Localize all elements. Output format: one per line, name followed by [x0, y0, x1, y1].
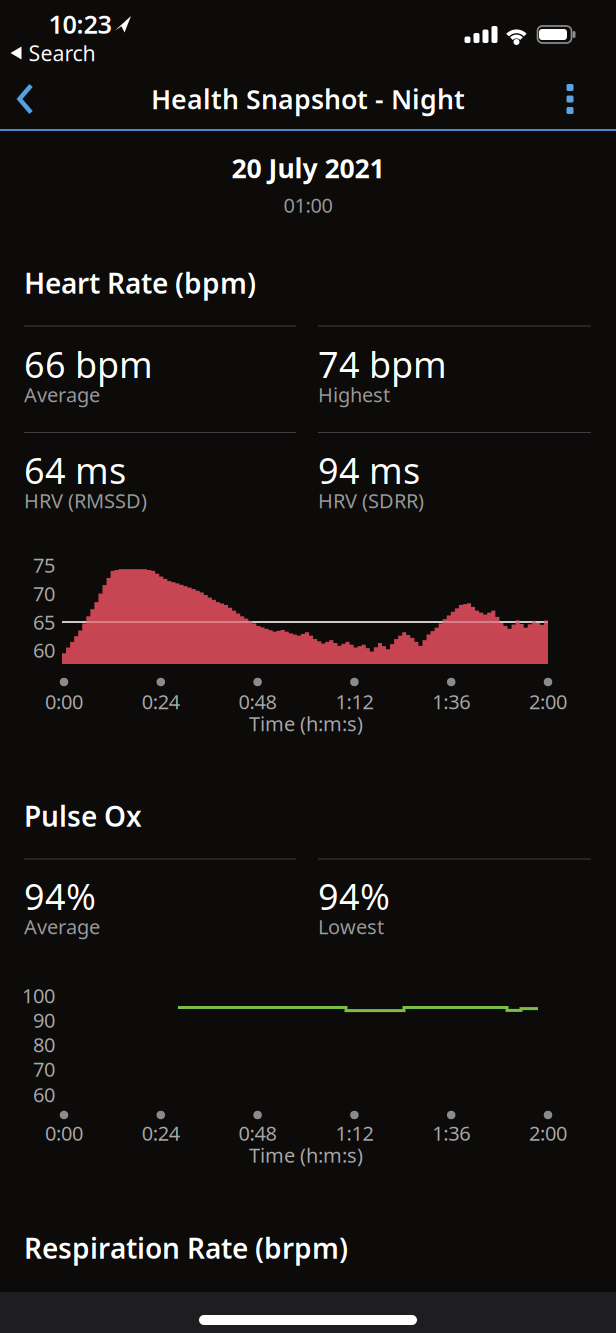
staticText: 70 — [33, 580, 55, 607]
staticText: 94 ms — [318, 446, 420, 494]
staticText: 1:36 — [432, 1120, 470, 1146]
staticText: 10:23 — [48, 7, 111, 41]
staticText: Pulse Ox — [24, 797, 142, 835]
staticText: 60 — [33, 1081, 55, 1108]
staticText: 100 — [22, 982, 55, 1009]
staticText: 60 — [33, 637, 55, 663]
staticText: Lowest — [318, 913, 384, 940]
staticText: 74 bpm — [318, 340, 447, 388]
staticText: HRV (RMSSD) — [24, 487, 147, 514]
staticText: 65 — [33, 609, 55, 635]
staticText: 0:48 — [239, 688, 277, 715]
staticText: 75 — [33, 552, 55, 578]
staticText: HRV (SDRR) — [318, 487, 424, 514]
staticText: 1:12 — [335, 1120, 373, 1146]
staticText: 0:24 — [142, 1120, 180, 1146]
staticText: Time (h:m:s) — [249, 1142, 363, 1168]
staticText: 0:48 — [239, 1120, 277, 1146]
staticText: 0:00 — [45, 688, 83, 715]
button[interactable] — [5, 77, 49, 121]
staticText: 90 — [33, 1007, 55, 1033]
staticText: 20 July 2021 — [231, 150, 384, 186]
staticText: 2:00 — [529, 688, 567, 715]
staticText: Heart Rate (bpm) — [24, 264, 256, 302]
staticText: Highest — [318, 381, 390, 408]
staticText: 2:00 — [529, 1120, 567, 1146]
staticText: Respiration Rate (brpm) — [24, 1229, 348, 1267]
staticText: 0:24 — [142, 688, 180, 715]
staticText: Search — [28, 39, 95, 67]
staticText: 1:12 — [335, 688, 373, 715]
staticText: 94% — [24, 872, 96, 920]
button[interactable] — [552, 77, 588, 121]
staticText: 1:36 — [432, 688, 470, 715]
staticText: 66 bpm — [24, 340, 153, 388]
staticText: Average — [24, 913, 100, 940]
staticText: Time (h:m:s) — [249, 710, 363, 737]
staticText: 01:00 — [283, 192, 332, 218]
staticText: 64 ms — [24, 446, 126, 494]
staticText: Average — [24, 381, 100, 408]
staticText: 80 — [33, 1031, 55, 1058]
staticText: Health Snapshot - Night — [151, 81, 465, 117]
staticText: 70 — [33, 1056, 55, 1082]
staticText: 0:00 — [45, 1120, 83, 1146]
staticText: 94% — [318, 872, 390, 920]
